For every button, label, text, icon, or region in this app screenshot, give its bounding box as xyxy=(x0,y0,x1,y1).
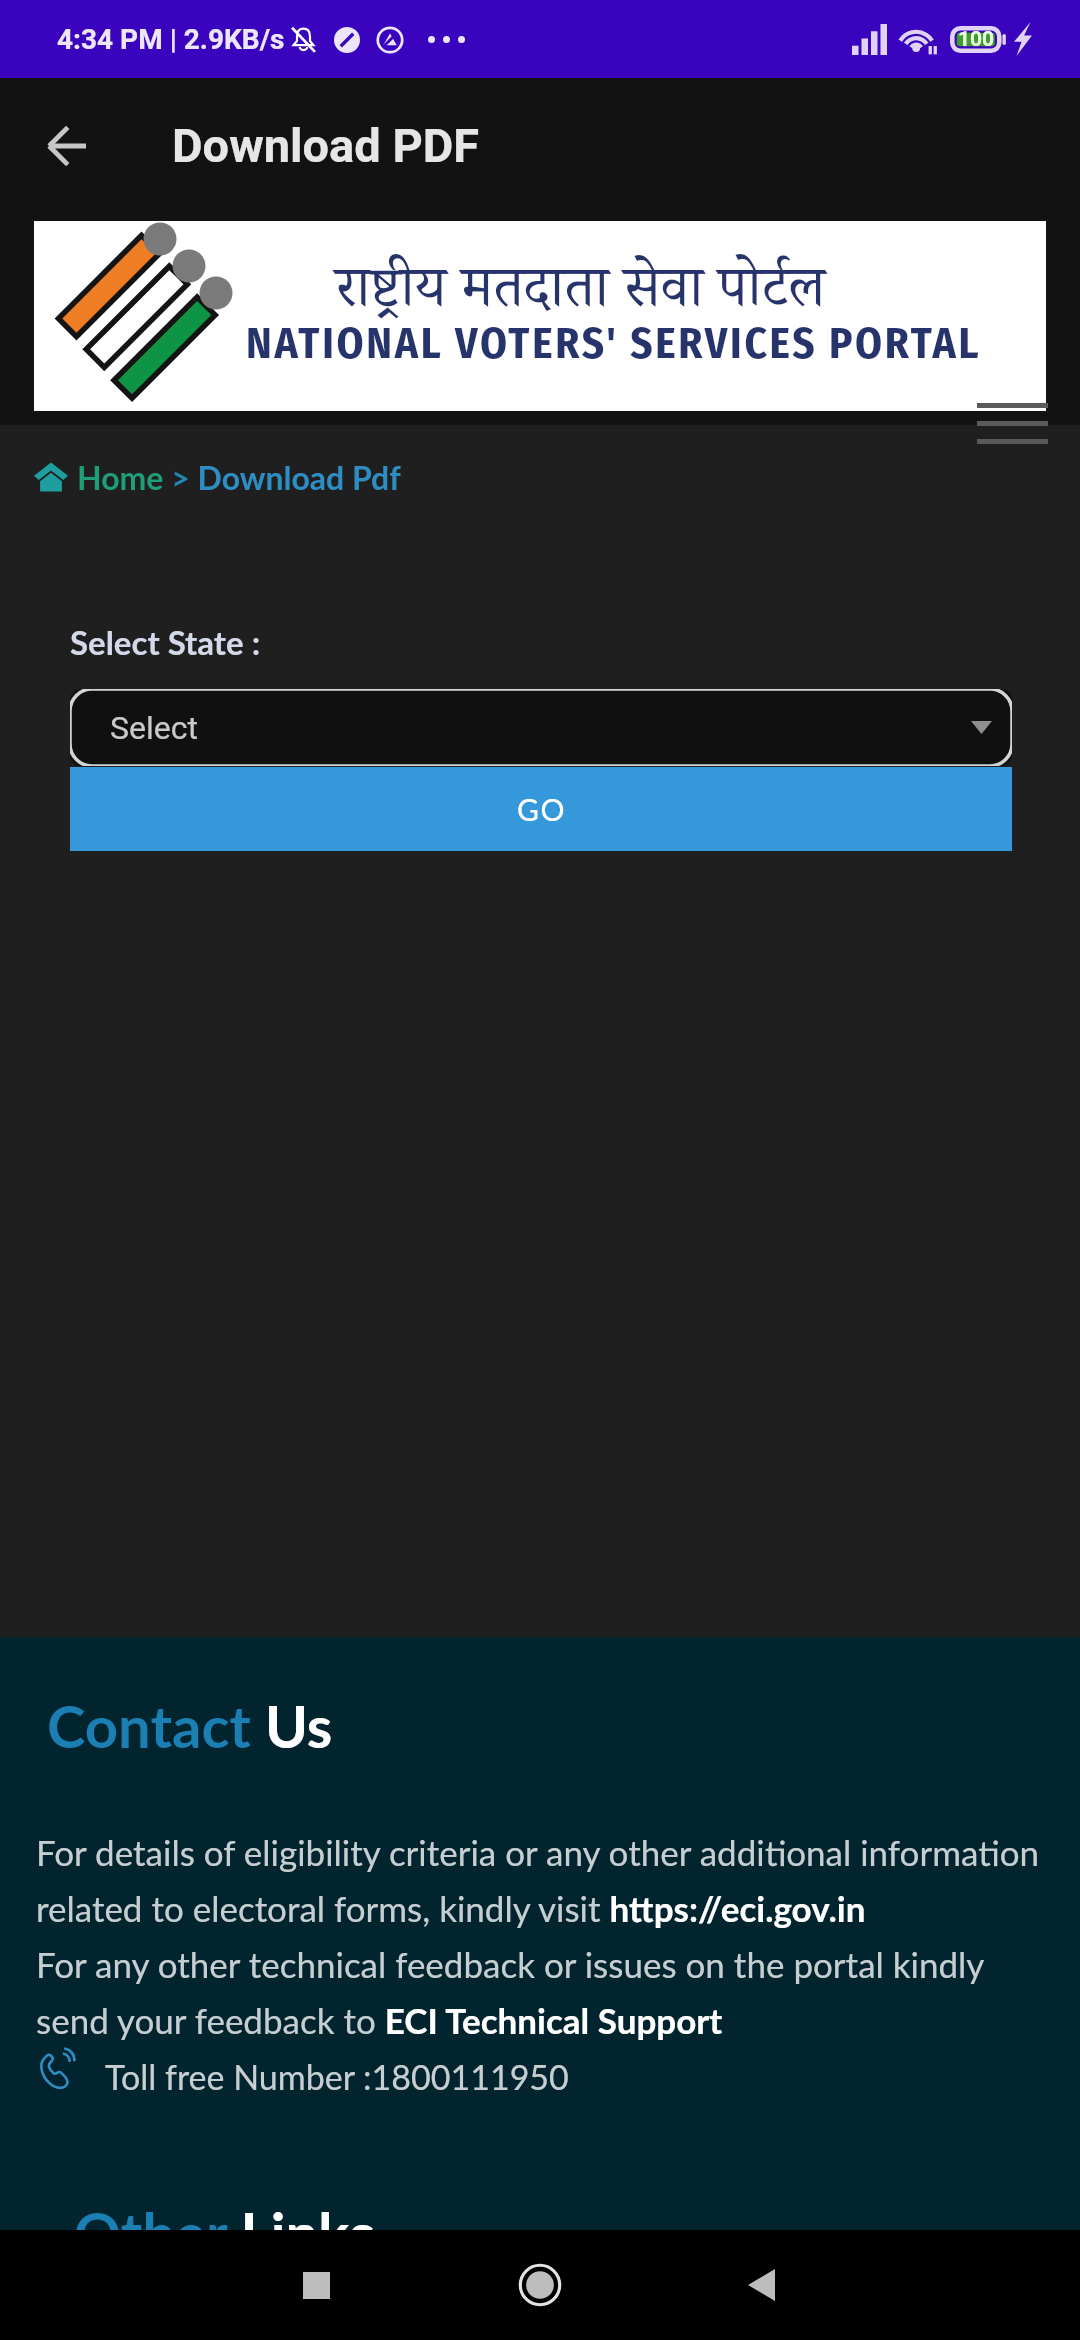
staticText: Select State : xyxy=(70,622,261,662)
button[interactable]: Select xyxy=(70,689,1012,766)
button[interactable]: GO xyxy=(70,767,1012,851)
staticText: Download PDF xyxy=(172,118,480,173)
button[interactable]: Back xyxy=(0,78,133,213)
staticText: Contact Us xyxy=(47,1691,333,1761)
staticText: राष्ट्रीय मतदाता सेवा पोर्टल xyxy=(335,268,826,332)
staticText: GO xyxy=(517,791,566,827)
button[interactable]: Menu xyxy=(977,403,1048,444)
staticText: Select xyxy=(110,709,198,747)
button[interactable]: Recents xyxy=(206,2230,426,2340)
staticText: Home > Download Pdf xyxy=(77,458,401,496)
staticText: NATIONAL VOTERS' SERVICES PORTAL xyxy=(246,319,982,369)
button[interactable]: Back xyxy=(651,2230,871,2340)
staticText: Other Links xyxy=(74,2198,375,2268)
staticText: Toll free Number :1800111950 xyxy=(105,2044,569,2100)
staticText: For details of eligibility criteria or a… xyxy=(36,1820,1044,1932)
staticText: 100 xyxy=(958,27,995,52)
staticText: 4:34 PM | 2.9KB/s xyxy=(57,23,285,56)
staticText: For any other technical feedback or issu… xyxy=(36,1932,1044,2044)
button[interactable]: Home xyxy=(430,2230,650,2340)
